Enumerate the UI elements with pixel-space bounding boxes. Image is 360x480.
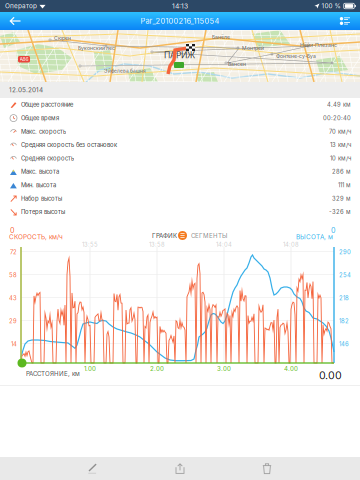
staticText: 146 bbox=[339, 340, 349, 348]
button[interactable]: Общее расстояние bbox=[0, 98, 360, 111]
button[interactable]: Макс. высота bbox=[0, 165, 360, 178]
staticText: 329 м bbox=[332, 195, 351, 202]
staticText: 72 bbox=[10, 248, 17, 256]
button[interactable]: Delete bbox=[236, 457, 298, 480]
staticText: РАССТОЯНИЕ, км bbox=[26, 370, 80, 377]
staticText: 0.00 bbox=[319, 369, 342, 382]
staticText: 4.00 bbox=[284, 365, 298, 372]
button[interactable]: Общее время bbox=[0, 111, 360, 125]
staticText: Средняя скорость без остановок bbox=[21, 141, 117, 148]
staticText: Общее расстояние bbox=[21, 101, 73, 108]
staticText: Сюрен bbox=[54, 35, 71, 41]
staticText: 100 % bbox=[321, 2, 340, 10]
staticText: Набор высоты bbox=[21, 195, 62, 202]
staticText: 182 bbox=[339, 317, 349, 325]
staticText: 10 км/ч bbox=[330, 155, 351, 162]
staticText: 13:58 bbox=[149, 241, 165, 248]
button[interactable]: Мин. высота bbox=[0, 178, 360, 192]
staticText: 14:13 bbox=[172, 2, 188, 10]
staticText: -326 м bbox=[329, 208, 351, 215]
button[interactable]: Edit bbox=[62, 457, 124, 480]
staticText: 13 км/ч bbox=[330, 141, 351, 148]
button[interactable]: Макс. скорость bbox=[0, 125, 360, 138]
button[interactable]: Chart mode bbox=[178, 231, 187, 240]
staticText: 1.00 bbox=[84, 365, 96, 372]
staticText: Потеря высоты bbox=[21, 208, 65, 215]
staticText: 0 bbox=[331, 226, 336, 235]
staticText: Общее время bbox=[21, 115, 59, 122]
staticText: Оператор bbox=[5, 2, 37, 10]
staticText: СКОРОСТЬ, км/ч bbox=[9, 233, 63, 241]
button[interactable]: Средняя скорость bbox=[0, 152, 360, 165]
staticText: 4.49 км bbox=[327, 101, 351, 108]
staticText: 3.00 bbox=[217, 365, 231, 372]
staticText: 43 bbox=[9, 294, 17, 302]
staticText: 14:04 bbox=[216, 241, 232, 248]
button[interactable]: Share bbox=[149, 457, 211, 480]
staticText: 12.05.2014 bbox=[9, 86, 43, 94]
staticText: Мин. высота bbox=[21, 182, 56, 189]
staticText: Фонтене-су-Буа bbox=[276, 53, 316, 59]
staticText: Вансен bbox=[228, 61, 246, 67]
staticText: A86 bbox=[19, 56, 28, 62]
button[interactable]: ГРАФИК bbox=[152, 232, 177, 239]
staticText: 00:20:40 bbox=[323, 115, 351, 122]
staticText: Банёле bbox=[212, 34, 230, 40]
staticText: ВЫСОТА, м bbox=[296, 233, 333, 241]
staticText: 111 м bbox=[338, 182, 351, 189]
staticText: СЕГМЕНТЫ bbox=[191, 232, 227, 239]
staticText: Средняя скорость bbox=[21, 155, 74, 162]
staticText: Буконский лес bbox=[78, 45, 115, 51]
button[interactable]: Набор высоты bbox=[0, 192, 360, 205]
button[interactable]: СЕГМЕНТЫ bbox=[191, 232, 227, 239]
staticText: 0 bbox=[10, 226, 15, 235]
staticText: 290 bbox=[339, 248, 351, 256]
staticText: Монтрёй bbox=[242, 45, 264, 51]
staticText: 29 bbox=[9, 317, 17, 325]
staticText: 218 bbox=[339, 294, 349, 302]
staticText: Нёйи-Плезанс bbox=[300, 42, 337, 48]
staticText: 2.00 bbox=[150, 365, 164, 372]
staticText: 254 bbox=[339, 271, 351, 279]
button[interactable]: Track options bbox=[332, 12, 358, 30]
staticText: Эйфелева башня bbox=[104, 68, 146, 74]
staticText: 13:55 bbox=[82, 241, 98, 248]
staticText: ГРАФИК bbox=[152, 232, 177, 239]
staticText: 286 м bbox=[332, 168, 351, 175]
staticText: Par_20100216_115054 bbox=[140, 16, 219, 25]
staticText: Макс. высота bbox=[21, 168, 59, 175]
button[interactable]: Средняя скорость без остановок bbox=[0, 138, 360, 152]
button[interactable]: Back bbox=[2, 12, 28, 30]
staticText: 14:08 bbox=[283, 241, 299, 248]
staticText: ПАРИЖ bbox=[164, 50, 195, 60]
staticText: Макс. скорость bbox=[21, 128, 66, 135]
staticText: 70 км/ч bbox=[329, 128, 351, 135]
staticText: 14 bbox=[11, 340, 17, 348]
staticText: 58 bbox=[9, 271, 17, 279]
button[interactable]: Потеря высоты bbox=[0, 205, 360, 219]
